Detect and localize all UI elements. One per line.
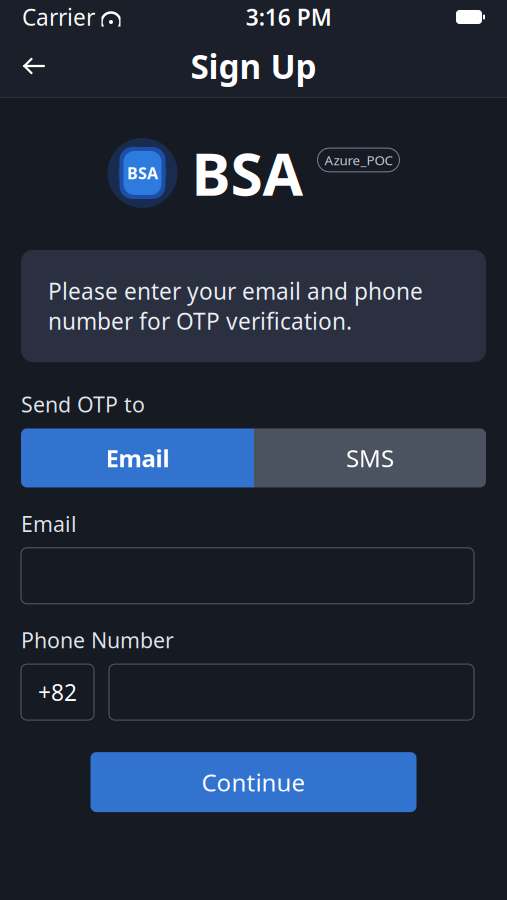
- button[interactable]: SMS: [254, 428, 486, 487]
- button[interactable]: Email: [21, 428, 254, 487]
- staticText: Send OTP to: [21, 390, 145, 418]
- staticText: Azure_POC: [324, 151, 392, 169]
- staticText: Email: [105, 442, 169, 474]
- staticText: Sign Up: [190, 44, 316, 88]
- staticText: Carrier: [22, 2, 95, 32]
- staticText: BSA: [191, 134, 303, 212]
- staticText: BSA: [127, 162, 158, 183]
- button[interactable]: Back: [8, 40, 60, 92]
- staticText: Email: [21, 509, 77, 538]
- staticText: Phone Number: [21, 626, 174, 654]
- staticText: Continue: [201, 766, 305, 798]
- staticText: +82: [38, 677, 77, 707]
- staticText: 3:16 PM: [246, 2, 332, 32]
- button[interactable]: Continue: [90, 752, 416, 812]
- staticText: Please enter your email and phone number…: [48, 276, 423, 336]
- staticText: SMS: [346, 442, 394, 474]
